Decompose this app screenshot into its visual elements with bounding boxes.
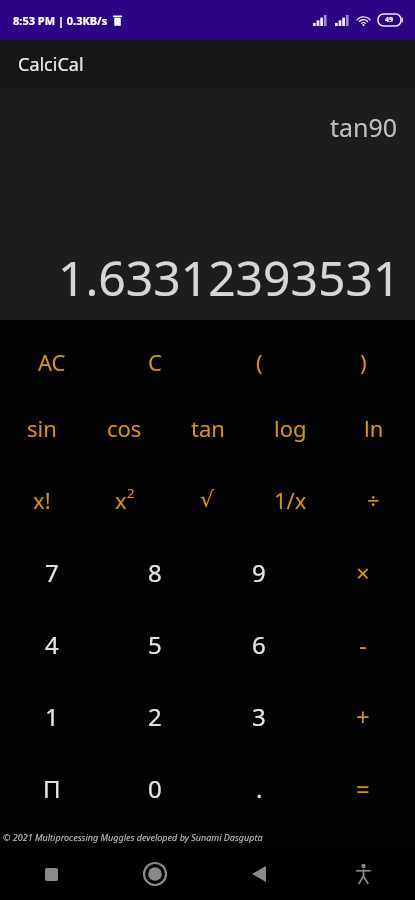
staticText: Π xyxy=(43,772,61,805)
button[interactable]: Back xyxy=(207,848,311,900)
button[interactable]: 6 xyxy=(207,608,311,680)
button[interactable]: × xyxy=(311,536,415,608)
button[interactable]: sin xyxy=(0,392,83,464)
staticText: + xyxy=(356,700,370,733)
button[interactable]: C xyxy=(103,332,207,392)
staticText: x xyxy=(115,485,127,515)
button[interactable]: 2 xyxy=(103,680,207,752)
staticText: 4 xyxy=(45,628,59,661)
button[interactable]: 0 xyxy=(103,752,207,824)
button[interactable]: 5 xyxy=(103,608,207,680)
staticText: CalciCal xyxy=(18,52,84,77)
button[interactable]: x! xyxy=(0,464,83,536)
button[interactable]: AC xyxy=(0,332,103,392)
staticText: © 2021 Multiprocessing Muggles developed… xyxy=(3,831,263,843)
button[interactable]: 4 xyxy=(0,608,103,680)
staticText: 7 xyxy=(45,556,59,589)
staticText: log xyxy=(274,413,307,443)
button[interactable]: ÷ xyxy=(332,464,415,536)
button[interactable]: log xyxy=(249,392,332,464)
staticText: 9 xyxy=(252,556,266,589)
staticText: 1 xyxy=(45,700,59,733)
staticText: ( xyxy=(256,347,263,377)
staticText: - xyxy=(359,628,367,661)
staticText: 3 xyxy=(252,700,266,733)
button[interactable]: - xyxy=(311,608,415,680)
button[interactable]: ln xyxy=(332,392,415,464)
staticText: ) xyxy=(360,347,367,377)
staticText: C xyxy=(148,347,162,377)
staticText: 0 xyxy=(148,772,162,805)
button[interactable]: 8 xyxy=(103,536,207,608)
button[interactable]: . xyxy=(207,752,311,824)
button[interactable]: Π xyxy=(0,752,103,824)
staticText: 8 xyxy=(148,556,162,589)
button[interactable]: √ xyxy=(166,464,249,536)
button[interactable]: Accessibility xyxy=(311,848,415,900)
staticText: cos xyxy=(107,413,142,443)
button[interactable]: ( xyxy=(207,332,311,392)
button[interactable]: ) xyxy=(311,332,415,392)
staticText: 2 xyxy=(148,700,162,733)
staticText: = xyxy=(356,772,370,805)
staticText: AC xyxy=(38,347,66,377)
button[interactable]: 9 xyxy=(207,536,311,608)
button[interactable]: tan xyxy=(166,392,249,464)
staticText: . xyxy=(256,772,263,805)
staticText: 2 xyxy=(127,484,135,502)
button[interactable]: + xyxy=(311,680,415,752)
button[interactable]: 3 xyxy=(207,680,311,752)
staticText: 1.63312393531 xyxy=(58,245,401,310)
staticText: × xyxy=(356,556,370,589)
staticText: 1/x xyxy=(274,485,307,515)
staticText: tan90 xyxy=(330,110,398,144)
staticText: ln xyxy=(364,413,384,443)
staticText: √ xyxy=(200,487,215,513)
button[interactable]: Home xyxy=(103,848,207,900)
button[interactable]: x xyxy=(83,464,166,536)
staticText: 49 xyxy=(385,15,394,25)
button[interactable]: cos xyxy=(83,392,166,464)
staticText: tan xyxy=(191,413,225,443)
staticText: x! xyxy=(33,485,51,515)
button[interactable]: 1 xyxy=(0,680,103,752)
button[interactable]: 7 xyxy=(0,536,103,608)
button[interactable]: = xyxy=(311,752,415,824)
staticText: 8:53 PM | 0.3KB/s xyxy=(13,13,108,28)
staticText: ÷ xyxy=(367,485,380,515)
staticText: sin xyxy=(27,413,57,443)
staticText: 5 xyxy=(148,628,162,661)
button[interactable]: 1/x xyxy=(249,464,332,536)
staticText: 6 xyxy=(252,628,266,661)
button[interactable]: Recent apps xyxy=(0,848,103,900)
